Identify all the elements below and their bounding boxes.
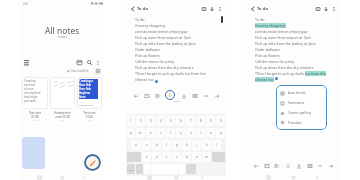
button[interactable]: r — [156, 128, 165, 138]
button[interactable]: More options — [330, 5, 337, 12]
button[interactable]: More options — [94, 59, 101, 66]
button[interactable]: x — [152, 152, 161, 162]
button[interactable]: z — [142, 152, 151, 162]
button[interactable]: Symbols — [127, 164, 135, 174]
button[interactable]: Checklist — [273, 162, 280, 169]
button[interactable]: y — [176, 128, 185, 138]
button[interactable]: p — [216, 128, 225, 138]
button[interactable]: Recents — [147, 175, 152, 180]
button[interactable]: Insert element — [200, 5, 207, 12]
button[interactable]: Undo — [132, 92, 139, 99]
button[interactable]: Link — [202, 92, 209, 99]
button[interactable]: Redo — [327, 162, 334, 169]
button[interactable]: Home — [60, 175, 65, 180]
button[interactable]: m — [202, 152, 211, 162]
button[interactable]: Insert element — [314, 5, 321, 12]
staticText: Pick up flowers — [255, 53, 281, 58]
button[interactable]: c — [162, 152, 171, 162]
button[interactable]: f — [162, 140, 171, 150]
button[interactable]: v — [172, 152, 181, 162]
button[interactable]: AI assist — [284, 162, 291, 169]
button[interactable]: 3 — [146, 116, 155, 126]
button[interactable]: n — [192, 152, 201, 162]
button[interactable]: d — [152, 140, 161, 150]
button[interactable]: a — [131, 140, 141, 150]
button[interactable]: Undo — [252, 162, 259, 169]
button[interactable]: k — [202, 140, 211, 150]
button[interactable]: Back — [200, 175, 205, 180]
button[interactable]: s — [142, 140, 151, 150]
button[interactable]: Correct spelling — [281, 108, 327, 118]
button[interactable]: 1 — [127, 116, 135, 126]
button[interactable]: Checklist — [154, 92, 161, 99]
button[interactable]: 8 — [196, 116, 205, 126]
button[interactable]: Share — [295, 162, 302, 169]
staticText: *Don't forget to pick up dad's tux from … — [135, 71, 206, 76]
button[interactable]: 6 — [176, 116, 185, 126]
button[interactable]: Back — [129, 5, 136, 12]
button[interactable]: Back — [249, 5, 256, 12]
button[interactable]: g — [172, 140, 181, 150]
button[interactable]: Change view — [95, 68, 101, 74]
button[interactable]: 2 — [136, 116, 145, 126]
button[interactable]: Calendar — [76, 59, 83, 66]
button[interactable]: l — [212, 140, 221, 150]
button[interactable]: t — [166, 128, 175, 138]
button[interactable]: Insert image — [263, 162, 270, 169]
button[interactable]: 5 — [166, 116, 175, 126]
button[interactable]: Pin note — [322, 5, 329, 12]
button[interactable]: Handwritten — [50, 77, 75, 123]
button[interactable]: Recents — [37, 175, 42, 180]
button[interactable]: Link — [316, 162, 323, 169]
button[interactable]: o — [206, 128, 215, 138]
button[interactable]: 0 — [216, 116, 225, 126]
button[interactable]: Home — [174, 175, 179, 180]
button[interactable]: Search — [86, 59, 93, 66]
staticText: Pick up cake from the bakery at 2pm — [255, 41, 316, 46]
button[interactable]: Back — [315, 175, 320, 180]
button[interactable]: Creating — [22, 77, 48, 123]
button[interactable]: Menu — [23, 59, 30, 66]
button[interactable]: Summarize — [281, 98, 327, 108]
button[interactable]: Pin note — [208, 5, 215, 12]
button[interactable]: Redo — [213, 92, 220, 99]
button[interactable]: Create new note — [84, 154, 101, 171]
button[interactable]: e — [146, 128, 155, 138]
button[interactable]: Date modified — [67, 69, 89, 73]
button[interactable]: Table — [191, 92, 198, 99]
button[interactable]: h — [182, 140, 191, 150]
button[interactable]: q — [127, 128, 135, 138]
button[interactable]: Share — [180, 92, 187, 99]
staticText: To do: — [255, 17, 266, 22]
button[interactable]: 4 — [156, 116, 165, 126]
button[interactable] — [22, 137, 45, 169]
button[interactable]: Recents — [266, 175, 271, 180]
button[interactable]: More options — [216, 5, 223, 12]
button[interactable]: 9 — [206, 116, 215, 126]
button[interactable]: u — [186, 128, 195, 138]
button[interactable]: i — [196, 128, 205, 138]
button[interactable]: Creating a — [77, 77, 102, 123]
staticText: vdsa.pdsv.cds — [79, 104, 94, 107]
button[interactable]: Table — [306, 162, 313, 169]
button[interactable]: Auto format — [281, 88, 327, 98]
button[interactable]: w — [136, 128, 145, 138]
button[interactable]: Back — [82, 175, 87, 180]
button[interactable]: b — [182, 152, 191, 162]
button[interactable]: j — [192, 140, 201, 150]
button[interactable]: Translate — [281, 118, 327, 127]
staticText: Pick up cake from the bakery at 2pm — [135, 41, 196, 46]
button[interactable]: Home — [291, 175, 296, 180]
staticText: !#1 — [129, 168, 133, 171]
button[interactable]: AI assist — [165, 90, 175, 100]
button[interactable]: 7 — [186, 116, 195, 126]
button[interactable]: Insert image — [143, 92, 150, 99]
staticText: Call the venue for party — [135, 59, 174, 64]
